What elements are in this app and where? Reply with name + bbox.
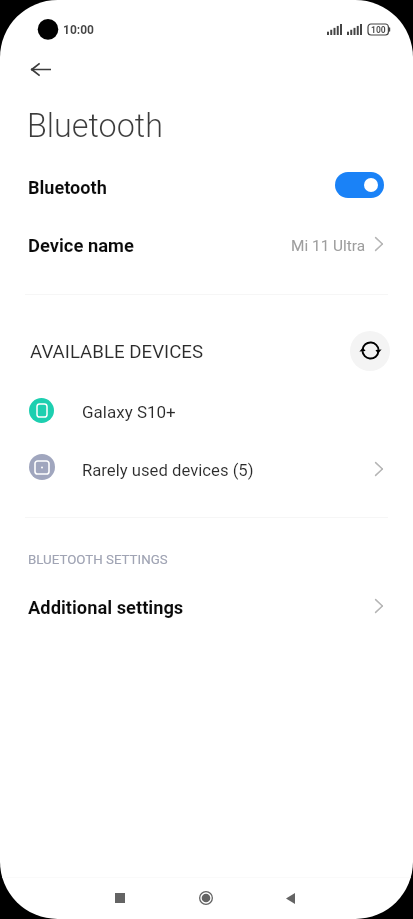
button[interactable]: Bluetooth switch — [335, 172, 384, 198]
staticText: 100 — [371, 25, 386, 35]
button[interactable]: Home — [182, 877, 230, 919]
button[interactable]: Recent apps — [96, 877, 144, 919]
staticText: Mi 11 Ultra — [291, 237, 366, 255]
staticText: Bluetooth — [28, 177, 107, 198]
staticText: BLUETOOTH SETTINGS — [28, 552, 168, 568]
staticText: Device name — [28, 235, 134, 257]
button[interactable]: Rarely used devices (5) — [0, 456, 413, 486]
button[interactable]: Device name — [0, 229, 413, 262]
staticText: Additional settings — [28, 597, 184, 618]
button[interactable]: Additional settings — [0, 591, 413, 624]
button[interactable]: Refresh — [350, 331, 390, 371]
button[interactable]: Galaxy S10+ — [0, 397, 413, 427]
button[interactable]: Back — [266, 877, 314, 919]
staticText: Galaxy S10+ — [82, 402, 176, 422]
button[interactable]: Bluetooth — [0, 171, 413, 203]
staticText: Rarely used devices (5) — [82, 461, 254, 481]
staticText: 10:00 — [63, 23, 94, 37]
button[interactable]: Back — [20, 52, 60, 92]
staticText: Bluetooth — [27, 107, 163, 145]
staticText: AVAILABLE DEVICES — [30, 341, 204, 363]
